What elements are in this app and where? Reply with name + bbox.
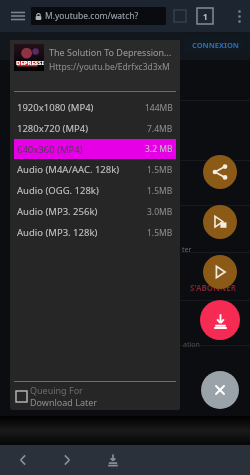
button[interactable]: Audio (MP3. 256k)	[17, 201, 173, 222]
button[interactable]: CONNEXION	[184, 36, 246, 53]
button[interactable]: 640x360 (MP4)	[17, 139, 173, 159]
staticText: 1920x1080 (MP4)	[17, 101, 94, 114]
button[interactable]: Downloads	[100, 447, 126, 473]
staticText: 1	[203, 11, 208, 22]
staticText: 3.2 MB	[145, 143, 173, 155]
button[interactable]: Forward	[54, 447, 80, 473]
staticText: Audio (M4A/AAC. 128k)	[17, 163, 120, 176]
button[interactable]: Close	[201, 371, 239, 409]
staticText: Audio (MP3. 128k)	[17, 226, 98, 239]
button[interactable]: 1280x720 (MP4)	[17, 118, 173, 139]
button[interactable]: Share	[203, 155, 237, 189]
staticText: 7.4MB	[147, 123, 173, 135]
button[interactable]: Tabs	[196, 7, 214, 25]
button[interactable]: DEPRESSI	[14, 44, 176, 90]
staticText: Https://youtu.be/Edrfxc3d3xM	[49, 61, 170, 73]
staticText: 3.0MB	[147, 206, 173, 218]
staticText: 640x360 (MP4)	[17, 143, 83, 156]
button[interactable]: Cast	[172, 8, 188, 24]
staticText: 1280x720 (MP4)	[17, 122, 89, 135]
button[interactable]: Audio (OGG. 128k)	[17, 180, 173, 201]
staticText: Download Later	[30, 396, 97, 408]
button[interactable]: Download	[200, 300, 240, 340]
button[interactable]: Queuing For	[16, 382, 180, 410]
button[interactable]: 1920x1080 (MP4)	[17, 97, 173, 118]
staticText: Audio (OGG. 128k)	[17, 184, 99, 197]
button[interactable]: Play	[203, 255, 237, 289]
staticText: Queuing For	[30, 384, 83, 396]
staticText: 1.5MB	[147, 185, 173, 197]
staticText: 144MB	[145, 102, 173, 114]
staticText: CONNEXION	[192, 40, 239, 50]
staticText: 1.5MB	[147, 164, 173, 176]
button[interactable]: Audio (M4A/AAC. 128k)	[17, 159, 173, 180]
staticText: ation	[183, 340, 200, 350]
staticText: The Solution To Depression...	[49, 46, 172, 58]
button[interactable]: Audio (MP3. 128k)	[17, 222, 173, 243]
staticText: Audio (MP3. 256k)	[17, 205, 98, 218]
staticText: ter	[182, 245, 192, 255]
staticText: M.youtube.com/watch?	[45, 10, 139, 22]
button[interactable]: More options	[228, 0, 250, 32]
button[interactable]: Menu	[4, 0, 32, 32]
button[interactable]: Play in popup	[203, 205, 237, 239]
staticText: DEPRESSI	[16, 59, 44, 67]
staticText: 1.5MB	[147, 227, 173, 239]
staticText: S'ABONNER	[190, 282, 236, 293]
button[interactable]: Back	[10, 447, 36, 473]
button[interactable]: M.youtube.com/watch?	[31, 7, 166, 25]
